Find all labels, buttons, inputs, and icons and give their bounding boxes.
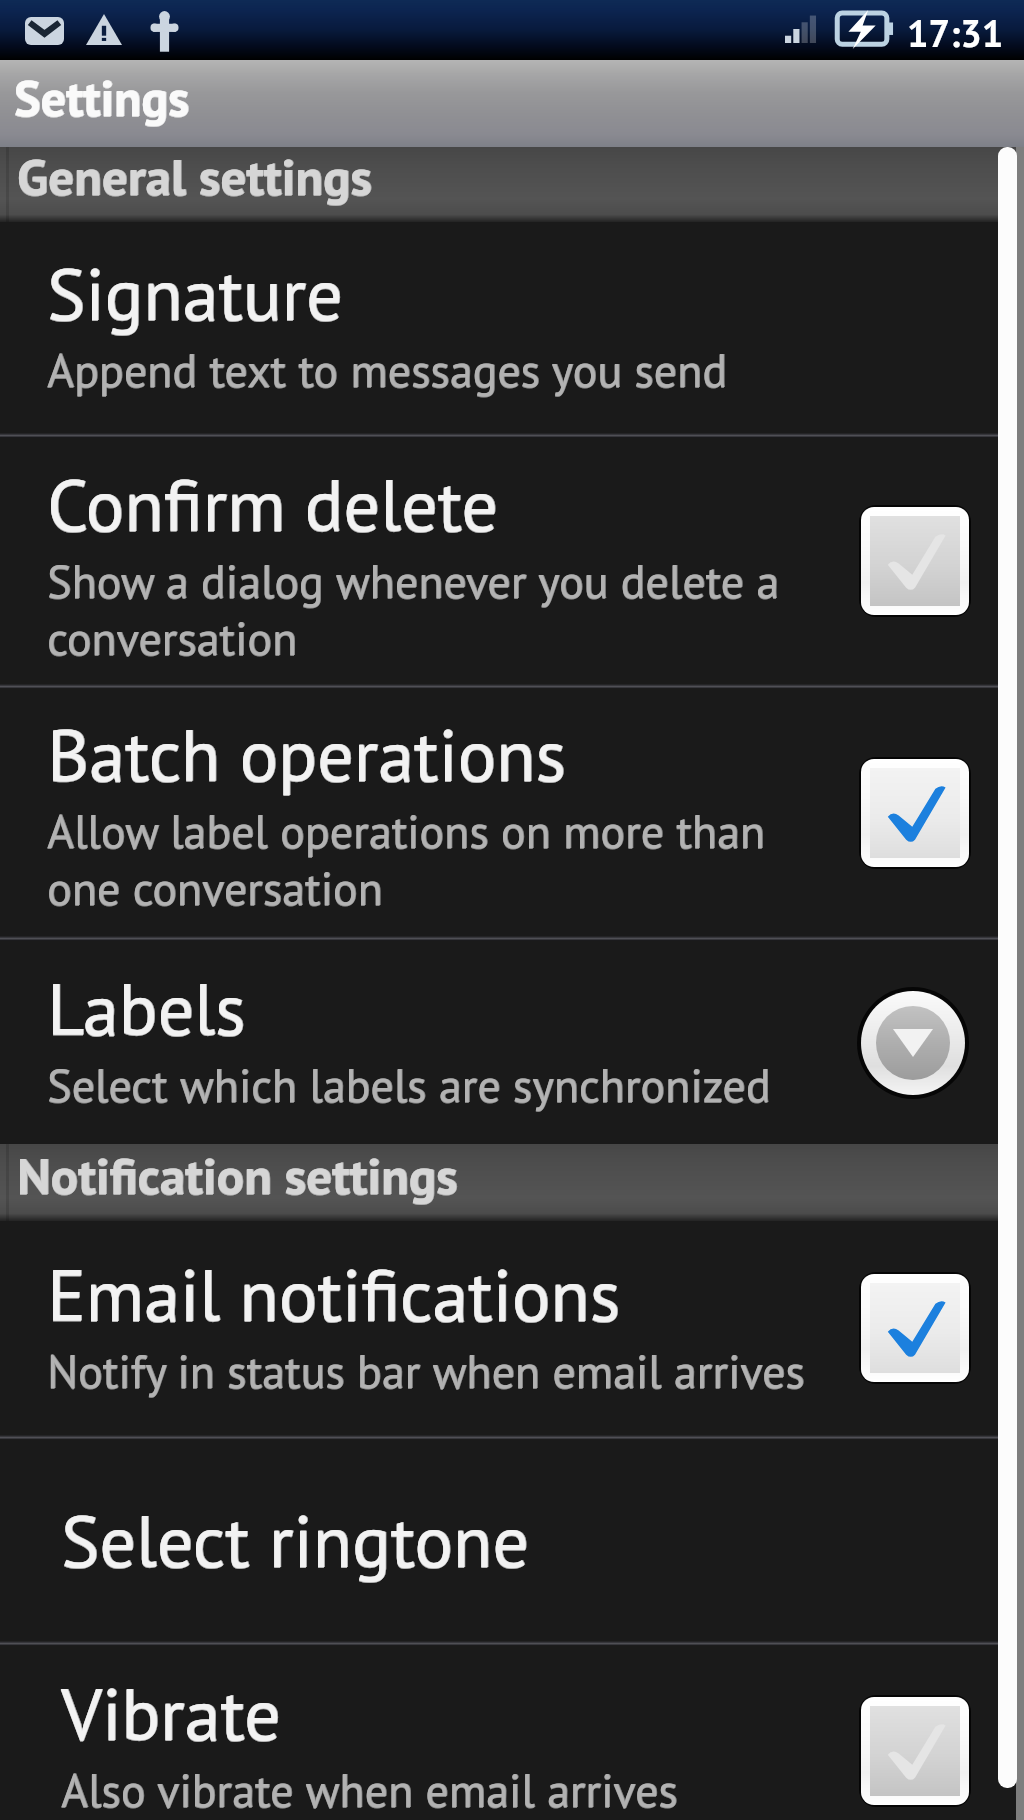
staticText: Notify in status bar when email arrives <box>48 1341 806 1401</box>
staticText: General settings <box>18 143 373 209</box>
staticText: Confirm delete <box>48 458 499 551</box>
staticText: Show a dialog whenever you delete a conv… <box>47 552 845 669</box>
staticText: Signature <box>47 247 343 340</box>
staticText: Batch operations <box>48 708 567 801</box>
staticText: Show a dialog whenever you delete a conv… <box>48 551 846 668</box>
staticText: General settings <box>17 143 372 209</box>
staticText: Notify in status bar when email arrives <box>47 1341 805 1401</box>
staticText: Select ringtone <box>62 1494 530 1587</box>
staticText: Notify in status bar when email arrives <box>47 1342 805 1402</box>
staticText: Email notifications <box>47 1248 621 1341</box>
staticText: Confirm delete <box>47 458 498 551</box>
button[interactable]: Labels <box>0 941 1024 1144</box>
staticText: Notification settings <box>18 1142 459 1208</box>
staticText: Notification settings <box>17 1142 458 1208</box>
staticText: Settings <box>14 65 190 130</box>
staticText: Allow label operations on more than one … <box>48 801 846 918</box>
staticText: Notification settings <box>17 1143 458 1209</box>
button[interactable]: Unchecked <box>859 1695 971 1807</box>
staticText: Allow label operations on more than one … <box>47 801 845 918</box>
staticText: Vibrate <box>62 1667 282 1760</box>
staticText: Vibrate <box>61 1668 281 1761</box>
staticText: Also vibrate when email arrives <box>61 1761 678 1820</box>
staticText: Also vibrate when email arrives <box>62 1760 679 1820</box>
button[interactable]: Signature <box>0 222 1024 433</box>
staticText: Email notifications <box>47 1249 621 1342</box>
staticText: Batch operations <box>47 708 566 801</box>
staticText: Select ringtone <box>61 1494 529 1587</box>
staticText: Vibrate <box>61 1667 281 1760</box>
button[interactable]: Vibrate <box>0 1646 1024 1820</box>
staticText: Settings <box>15 65 191 130</box>
staticText: Select which labels are synchronized <box>48 1055 772 1115</box>
staticText: Select which labels are synchronized <box>47 1055 771 1115</box>
staticText: Append text to messages you send <box>47 340 727 400</box>
staticText: Signature <box>47 248 343 341</box>
staticText: Labels <box>48 962 247 1055</box>
button[interactable]: Email notifications <box>0 1221 1024 1435</box>
staticText: Email notifications <box>48 1248 622 1341</box>
button[interactable]: Batch operations <box>0 689 1024 936</box>
staticText: Settings <box>14 66 190 131</box>
staticText: Signature <box>48 247 344 340</box>
staticText: Batch operations <box>47 709 566 802</box>
button[interactable]: Select ringtone <box>0 1440 1024 1641</box>
staticText: General settings <box>17 144 372 210</box>
staticText: Allow label operations on more than one … <box>47 802 845 919</box>
button[interactable]: Checked <box>859 1272 971 1384</box>
staticText: Show a dialog whenever you delete a conv… <box>47 551 845 668</box>
staticText: Labels <box>47 963 246 1056</box>
staticText: Confirm delete <box>47 459 498 552</box>
button[interactable]: Expand labels <box>855 985 971 1101</box>
button[interactable]: Unchecked <box>859 505 971 617</box>
staticText: Also vibrate when email arrives <box>61 1760 678 1820</box>
staticText: Labels <box>47 962 246 1055</box>
staticText: Append text to messages you send <box>48 340 728 400</box>
staticText: Append text to messages you send <box>47 341 727 401</box>
button[interactable]: Checked <box>859 757 971 869</box>
button[interactable]: Confirm delete <box>0 438 1024 684</box>
staticText: Select ringtone <box>61 1495 529 1588</box>
staticText: Select which labels are synchronized <box>47 1056 771 1116</box>
staticText: 17:31 <box>907 8 1004 57</box>
